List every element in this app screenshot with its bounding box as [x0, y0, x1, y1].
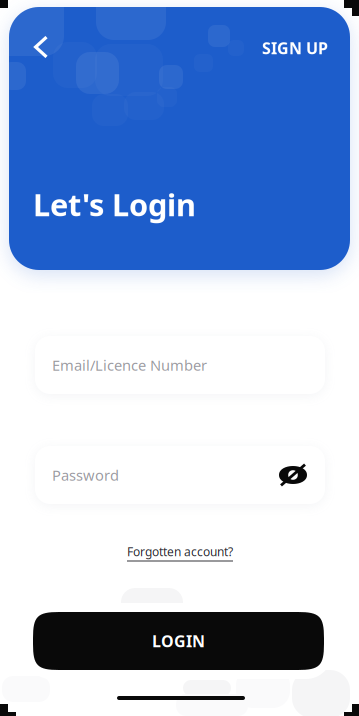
staticText: LOGIN [152, 630, 205, 652]
staticText: Password [52, 465, 119, 485]
button[interactable]: SIGN UP [250, 32, 328, 64]
staticText: SIGN UP [262, 37, 328, 59]
staticText: Forgotten account? [127, 543, 233, 559]
button[interactable]: Back [26, 31, 56, 63]
staticText: Let's Login [33, 184, 196, 225]
staticText: Email/Licence Number [52, 355, 207, 375]
button[interactable]: Forgotten account? [100, 542, 260, 564]
button[interactable]: Show password [278, 462, 308, 488]
button[interactable]: LOGIN [33, 612, 324, 670]
